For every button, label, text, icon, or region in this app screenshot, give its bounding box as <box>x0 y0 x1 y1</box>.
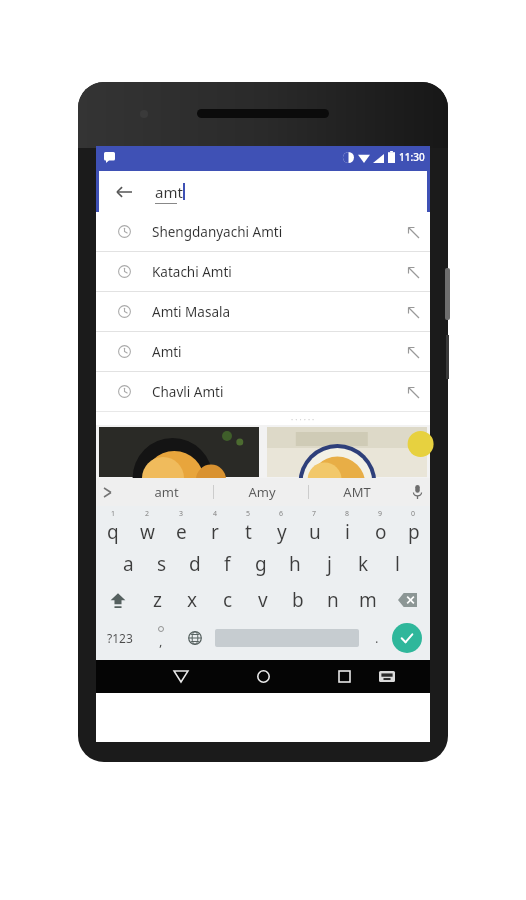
staticText: m <box>359 587 377 613</box>
staticText: 1 <box>111 509 116 519</box>
staticText: s <box>157 551 167 577</box>
button[interactable]: g <box>244 546 278 582</box>
button[interactable]: 1 <box>96 510 130 546</box>
button[interactable]: Shift <box>96 582 140 618</box>
staticText: v <box>258 587 268 613</box>
staticText: y <box>277 519 287 545</box>
button[interactable]: x <box>175 582 210 618</box>
staticText: Katachi Amti <box>152 263 232 281</box>
button[interactable]: m <box>350 582 385 618</box>
staticText: 2 <box>145 509 150 519</box>
staticText: b <box>292 587 304 613</box>
button[interactable]: d <box>178 546 211 582</box>
button[interactable]: Back <box>109 177 139 207</box>
button[interactable]: Change language <box>178 618 212 658</box>
staticText: w <box>140 519 155 545</box>
button[interactable]: Recent apps <box>324 660 364 693</box>
button[interactable]: c <box>210 582 245 618</box>
button[interactable]: 8 <box>331 510 364 546</box>
button[interactable]: 7 <box>298 510 331 546</box>
staticText: 9 <box>378 509 383 519</box>
staticText: u <box>309 519 321 545</box>
staticText: a <box>123 551 134 577</box>
button[interactable]: Amy <box>214 478 309 506</box>
button[interactable]: Chavli Amti <box>96 372 430 411</box>
button[interactable]: Comma and settings <box>144 618 178 658</box>
staticText: Amti <box>152 343 182 361</box>
button[interactable]: s <box>145 546 178 582</box>
staticText: h <box>289 551 301 577</box>
button[interactable]: 0 <box>397 510 430 546</box>
button[interactable]: l <box>380 546 414 582</box>
staticText: r <box>211 519 219 545</box>
button[interactable]: Insert suggestion <box>396 215 430 249</box>
button[interactable]: 9 <box>364 510 397 546</box>
staticText: i <box>345 519 350 545</box>
staticText: · · · · · · <box>291 414 315 425</box>
staticText: j <box>327 551 332 577</box>
button[interactable]: Shengdanyachi Amti <box>96 212 430 251</box>
button[interactable]: 5 <box>232 510 265 546</box>
button[interactable]: Hide keyboard <box>159 660 203 693</box>
staticText: Amy <box>248 483 276 501</box>
button[interactable]: Voice input <box>404 478 430 506</box>
button[interactable]: More suggestions <box>96 478 118 506</box>
staticText: l <box>395 551 400 577</box>
button[interactable]: v <box>245 582 280 618</box>
button[interactable]: n <box>315 582 350 618</box>
button[interactable]: Amti <box>96 332 430 371</box>
button[interactable]: Insert suggestion <box>396 335 430 369</box>
button[interactable]: Back <box>99 171 427 212</box>
button[interactable]: ?123 <box>96 618 144 658</box>
staticText: 0 <box>411 509 416 519</box>
button[interactable]: k <box>346 546 380 582</box>
staticText: q <box>107 519 119 545</box>
staticText: k <box>358 551 369 577</box>
staticText: AMT <box>343 483 371 501</box>
button[interactable]: Amti Masala <box>96 292 430 331</box>
staticText: o <box>375 519 387 545</box>
button[interactable]: Home <box>241 660 285 693</box>
button[interactable]: Switch keyboard <box>367 660 407 693</box>
button[interactable]: 6 <box>265 510 298 546</box>
button[interactable]: z <box>140 582 175 618</box>
button[interactable]: Katachi Amti <box>96 252 430 291</box>
button[interactable]: 2 <box>130 510 164 546</box>
staticText: Chavli Amti <box>152 383 224 401</box>
staticText: 7 <box>312 509 317 519</box>
staticText: g <box>255 551 267 577</box>
staticText: 5 <box>246 509 251 519</box>
button[interactable]: h <box>278 546 312 582</box>
button[interactable] <box>99 427 259 477</box>
button[interactable]: amt <box>118 478 214 506</box>
button[interactable]: Insert suggestion <box>396 375 430 409</box>
button[interactable]: Insert suggestion <box>396 255 430 289</box>
staticText: 3 <box>179 509 184 519</box>
button[interactable]: f <box>211 546 244 582</box>
button[interactable]: a <box>112 546 145 582</box>
button[interactable]: Search <box>392 623 422 653</box>
staticText: e <box>176 519 187 545</box>
staticText: ?123 <box>107 630 133 646</box>
button[interactable]: Insert suggestion <box>396 295 430 329</box>
staticText: Shengdanyachi Amti <box>152 223 283 241</box>
button[interactable]: 3 <box>164 510 198 546</box>
staticText: Amti Masala <box>152 303 231 321</box>
staticText: 11:30 <box>399 150 425 164</box>
button[interactable]: 4 <box>198 510 232 546</box>
staticText: amt <box>155 182 183 202</box>
button[interactable] <box>267 427 427 477</box>
staticText: , <box>159 632 163 650</box>
button[interactable]: b <box>280 582 315 618</box>
staticText: d <box>189 551 201 577</box>
button[interactable]: . <box>362 618 392 658</box>
button[interactable]: Backspace <box>385 582 430 618</box>
staticText: 8 <box>345 509 350 519</box>
staticText: 6 <box>279 509 284 519</box>
button[interactable]: AMT <box>309 478 404 506</box>
staticText: . <box>375 629 379 647</box>
staticText: f <box>224 551 231 577</box>
button[interactable]: j <box>312 546 346 582</box>
staticText: t <box>245 519 252 545</box>
